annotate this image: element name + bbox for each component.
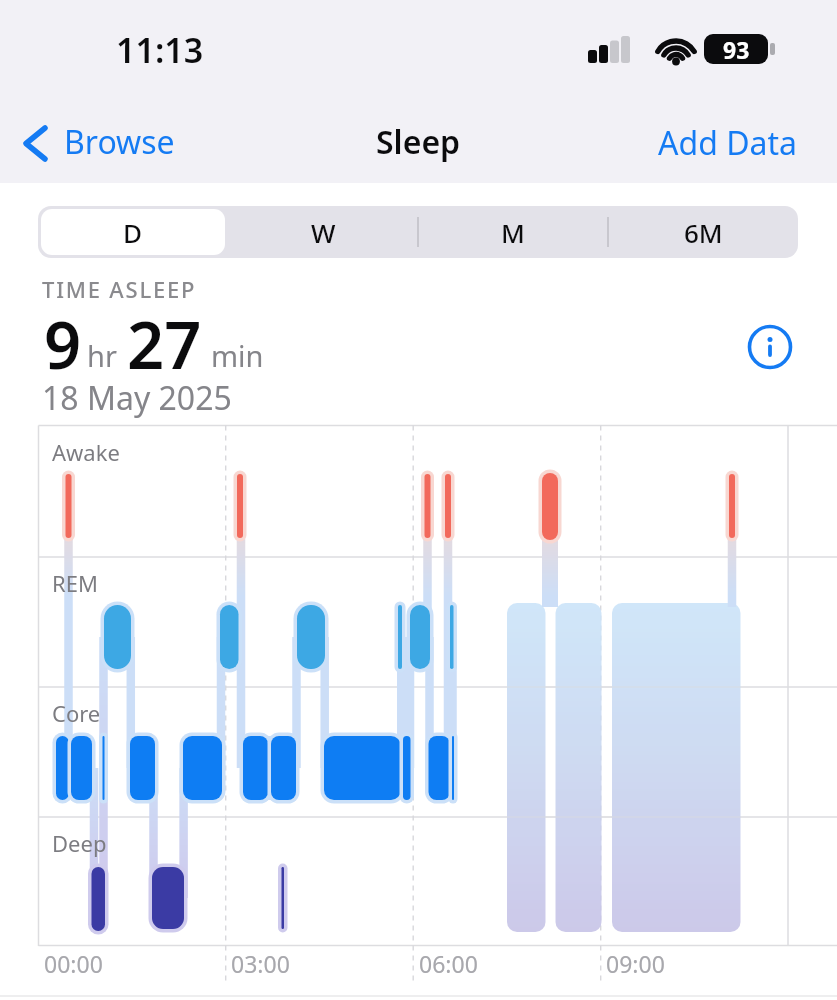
button[interactable]: W xyxy=(228,206,418,258)
button[interactable]: Browse xyxy=(14,120,194,166)
button[interactable]: D xyxy=(38,206,228,258)
staticText: 9 xyxy=(44,300,82,389)
staticText: Deep xyxy=(52,828,107,858)
staticText: 06:00 xyxy=(419,948,478,979)
staticText: Awake xyxy=(52,437,120,467)
staticText: min xyxy=(211,336,264,375)
staticText: 09:00 xyxy=(606,948,665,979)
button[interactable]: Add Data xyxy=(658,120,818,166)
button[interactable]: 6M xyxy=(608,206,798,258)
staticText: Core xyxy=(52,698,101,728)
staticText: M xyxy=(501,215,525,250)
staticText: Add Data xyxy=(658,121,797,165)
staticText: 18 May 2025 xyxy=(42,376,232,420)
staticText: 11:13 xyxy=(116,27,204,73)
staticText: 03:00 xyxy=(231,948,290,979)
staticText: TIME ASLEEP xyxy=(42,274,197,304)
staticText: 6M xyxy=(684,215,723,250)
staticText: 93 xyxy=(723,34,750,64)
staticText: hr xyxy=(87,336,117,375)
staticText: Sleep xyxy=(376,120,461,164)
button[interactable] xyxy=(746,323,794,371)
staticText: W xyxy=(311,215,336,250)
staticText: 27 xyxy=(127,300,202,389)
button[interactable]: M xyxy=(418,206,608,258)
staticText: D xyxy=(123,215,143,250)
staticText: Browse xyxy=(64,120,175,164)
staticText: REM xyxy=(52,568,98,598)
staticText: 00:00 xyxy=(44,948,103,979)
